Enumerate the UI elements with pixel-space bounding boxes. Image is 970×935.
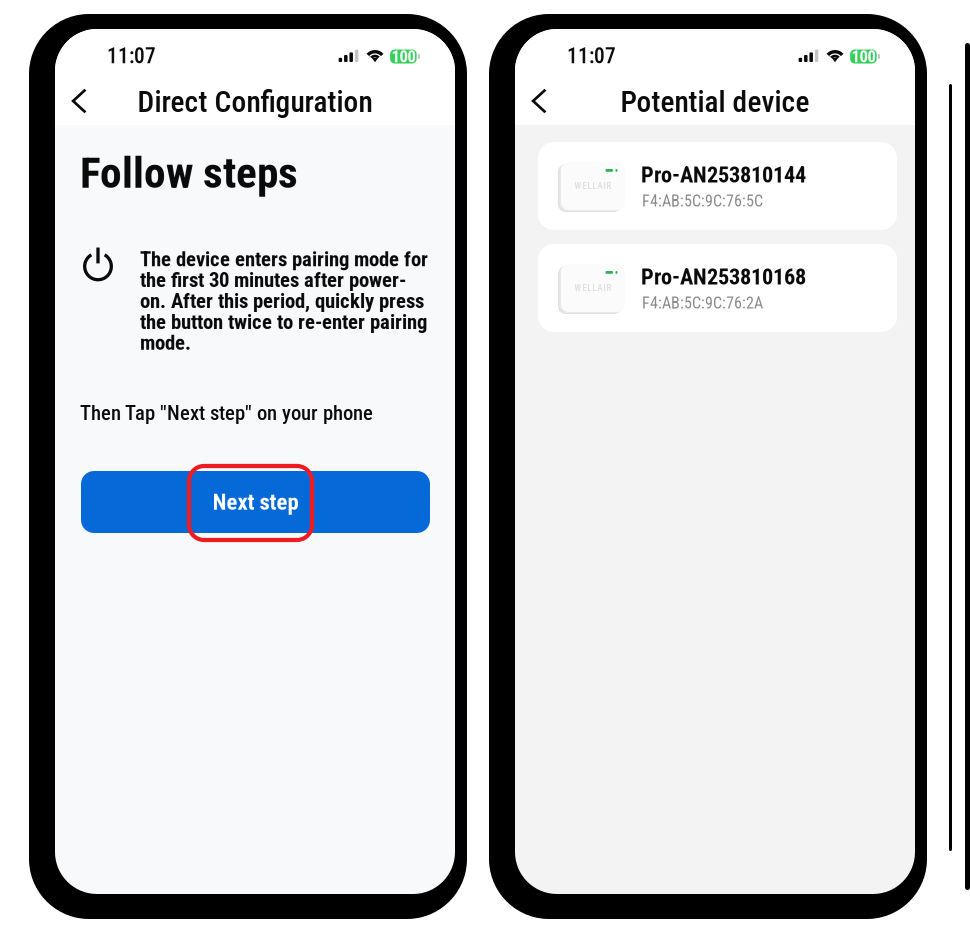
button[interactable]: Back xyxy=(61,78,100,125)
staticText: Next step xyxy=(212,489,298,515)
staticText: WELLAIR xyxy=(574,181,611,191)
staticText: Potential device xyxy=(620,85,809,119)
staticText: 100 xyxy=(391,47,415,66)
staticText: 11:07 xyxy=(107,43,156,68)
button[interactable]: Pro-AN253810168, F4:AB:5C:9C:76:2A xyxy=(538,244,897,332)
staticText: Pro-AN253810144 xyxy=(641,162,806,188)
staticText: WELLAIR xyxy=(574,283,611,293)
staticText: F4:AB:5C:9C:76:2A xyxy=(642,294,763,312)
staticText: F4:AB:5C:9C:76:5C xyxy=(642,192,763,210)
staticText: Direct Configuration xyxy=(137,85,372,119)
button[interactable]: Back xyxy=(521,78,560,125)
button[interactable]: Pro-AN253810144, F4:AB:5C:9C:76:5C xyxy=(538,142,897,230)
staticText: 100 xyxy=(851,47,875,66)
button[interactable]: Next step xyxy=(81,471,430,533)
staticText: Pro-AN253810168 xyxy=(641,264,806,290)
staticText: The device enters pairing mode for the f… xyxy=(140,247,428,355)
staticText: Then Tap "Next step" on your phone xyxy=(80,401,373,425)
staticText: 11:07 xyxy=(567,43,616,68)
staticText: Follow steps xyxy=(80,148,298,198)
